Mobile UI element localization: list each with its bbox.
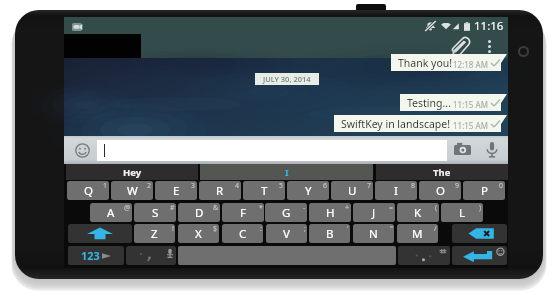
button[interactable]: K [397, 203, 439, 222]
button[interactable]: More options [481, 36, 498, 56]
staticText: J [372, 205, 376, 221]
button[interactable]: Hey [66, 164, 198, 180]
staticText: M [412, 226, 423, 242]
staticText: * [259, 203, 263, 213]
button[interactable]: V [266, 224, 307, 243]
staticText: V [283, 226, 290, 242]
staticText: T [261, 183, 268, 199]
staticText: 9 [455, 181, 460, 191]
staticText: F [240, 205, 246, 221]
staticText: N [369, 226, 378, 242]
staticText: ) [479, 203, 482, 213]
staticText: K [414, 205, 422, 221]
staticText: A [107, 205, 115, 221]
staticText: B [326, 226, 334, 242]
staticText: ' [347, 224, 349, 234]
staticText: & [213, 203, 219, 213]
button[interactable]: W [111, 181, 153, 200]
staticText: Thank you! [398, 56, 453, 70]
staticText: W [127, 183, 138, 199]
button[interactable]: The [376, 164, 508, 180]
staticText: 4 [235, 181, 240, 191]
button[interactable]: B [309, 224, 350, 243]
staticText: SwiftKey in landscape! [341, 117, 451, 131]
button[interactable]: 123 [68, 246, 124, 265]
button[interactable]: U [331, 181, 373, 200]
button[interactable]: Backspace [452, 224, 507, 243]
staticText: L [459, 205, 466, 221]
button[interactable]: Comma / voice input [126, 246, 176, 265]
button[interactable]: Emoji [75, 143, 90, 158]
staticText: G [282, 205, 291, 221]
button[interactable]: Enter [452, 246, 507, 265]
button[interactable]: Q [67, 181, 109, 200]
staticText: = [389, 203, 394, 213]
button[interactable]: Camera [454, 142, 471, 157]
staticText: I [394, 183, 398, 199]
staticText: The [433, 166, 451, 179]
button[interactable]: P [463, 181, 505, 200]
staticText: U [348, 183, 357, 199]
button[interactable]: M [397, 224, 438, 243]
staticText: Z [151, 226, 158, 242]
button[interactable]: Period [398, 246, 450, 265]
button[interactable]: F [222, 203, 264, 222]
staticText: S [152, 205, 159, 221]
button[interactable] [391, 54, 501, 71]
staticText: ( [435, 203, 438, 213]
button[interactable]: G [265, 203, 307, 222]
staticText: 6 [323, 181, 328, 191]
button[interactable]: I [200, 164, 373, 180]
button[interactable]: Shift [68, 224, 132, 243]
button[interactable]: N [353, 224, 394, 243]
staticText: 3 [191, 181, 196, 191]
staticText: 11:15 AM [453, 120, 488, 131]
button[interactable]: H [309, 203, 351, 222]
staticText: 11:15 AM [453, 99, 488, 110]
button[interactable]: X [178, 224, 219, 243]
staticText: R [216, 183, 224, 199]
staticText: E [173, 183, 180, 199]
staticText: - [303, 203, 306, 213]
staticText: Q [84, 183, 93, 199]
staticText: + [345, 203, 350, 213]
staticText: H [326, 205, 335, 221]
button[interactable]: I [375, 181, 417, 200]
staticText: @ [124, 203, 131, 213]
button[interactable]: C [222, 224, 263, 243]
button[interactable]: A [90, 203, 132, 222]
button[interactable] [334, 115, 501, 132]
button[interactable]: Z [134, 224, 175, 243]
button[interactable]: D [178, 203, 220, 222]
staticText: I [285, 166, 289, 179]
button[interactable]: O [419, 181, 461, 200]
staticText: 5 [279, 181, 284, 191]
staticText: / [434, 224, 437, 234]
button[interactable] [97, 140, 447, 161]
staticText: Testing... [407, 96, 451, 110]
button[interactable]: Attach [448, 35, 470, 57]
staticText: X [195, 226, 202, 242]
staticText: 11:16 [474, 18, 504, 34]
button[interactable]: J [353, 203, 395, 222]
staticText: 12:18 AM [453, 59, 488, 70]
staticText: ! [172, 224, 174, 234]
staticText: " [390, 224, 393, 234]
staticText: 123 [81, 248, 100, 263]
button[interactable]: S [134, 203, 176, 222]
staticText: P [481, 183, 488, 199]
button[interactable]: T [243, 181, 285, 200]
button[interactable]: Y [287, 181, 329, 200]
staticText: ; [304, 224, 306, 234]
staticText: C [239, 226, 247, 242]
button[interactable] [400, 94, 501, 111]
staticText: JULY 30, 2014 [263, 74, 311, 84]
button[interactable]: L [441, 203, 483, 222]
staticText: # [170, 203, 175, 213]
button[interactable]: E [155, 181, 197, 200]
button[interactable]: Voice message [485, 141, 499, 158]
staticText: 2 [147, 181, 152, 191]
staticText: 0 [499, 181, 504, 191]
button[interactable]: R [199, 181, 241, 200]
